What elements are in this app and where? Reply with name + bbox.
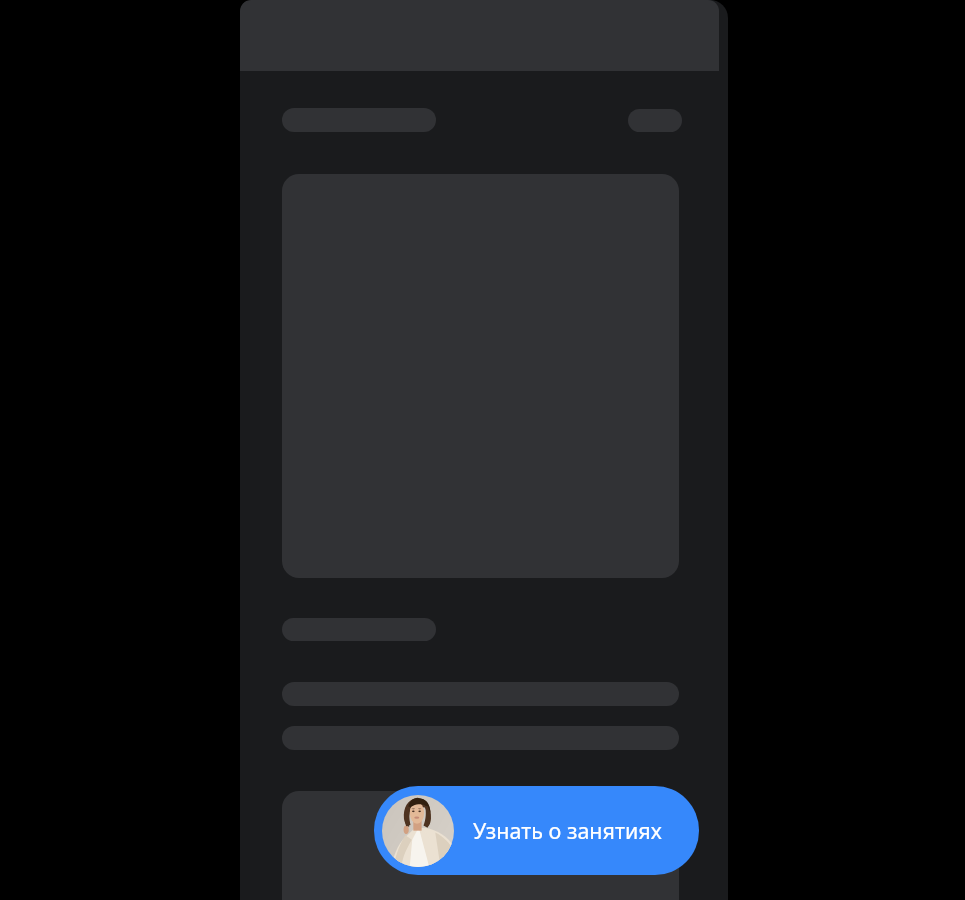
button[interactable]: Loading content (282, 791, 679, 900)
button[interactable]: Узнать о занятиях (374, 786, 699, 875)
staticText: Узнать о занятиях (473, 816, 662, 845)
